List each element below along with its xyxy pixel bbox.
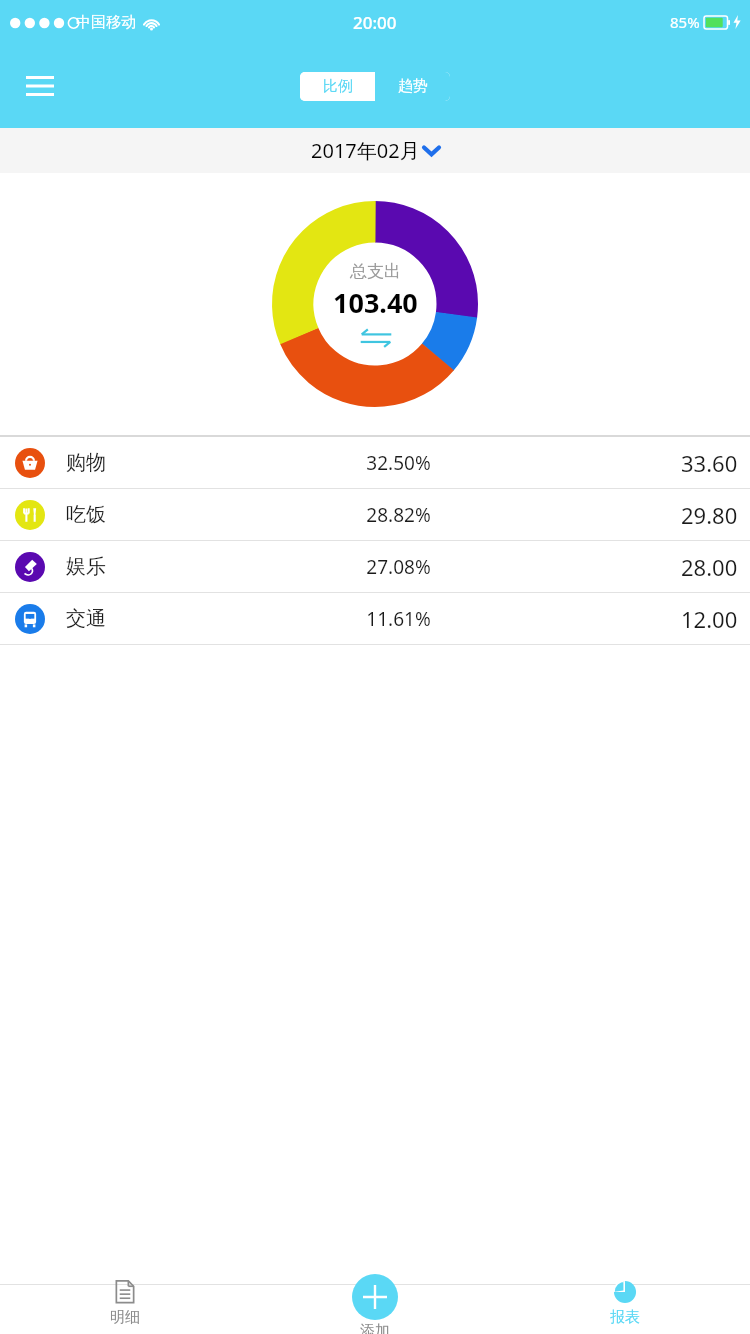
staticText: 总支出 [350, 261, 401, 282]
staticText: 20:00 [353, 11, 397, 34]
button[interactable]: 2017年02月 [297, 133, 454, 168]
button[interactable]: 趋势 [375, 72, 450, 101]
button[interactable]: 购物 [0, 437, 750, 488]
staticText: 购物 [66, 450, 106, 475]
staticText: 12.00 [681, 604, 738, 634]
button[interactable]: 娱乐 [0, 541, 750, 592]
button[interactable]: 添加 [250, 1274, 500, 1334]
staticText: 吃饭 [66, 502, 106, 527]
staticText: 娱乐 [66, 554, 106, 579]
staticText: 27.08% [116, 554, 681, 580]
staticText: 交通 [66, 606, 106, 631]
staticText: 报表 [610, 1308, 640, 1327]
staticText: 29.80 [681, 500, 738, 530]
staticText: 趋势 [398, 77, 428, 96]
button[interactable]: 报表 [500, 1274, 750, 1334]
button[interactable]: Menu [13, 59, 67, 113]
staticText: 中国移动 [76, 13, 136, 32]
staticText: 28.82% [116, 502, 681, 528]
button[interactable]: Switch income expense [359, 329, 393, 347]
staticText: 添加 [360, 1322, 390, 1334]
staticText: 32.50% [116, 450, 681, 476]
button[interactable]: 吃饭 [0, 489, 750, 540]
staticText: 33.60 [681, 448, 738, 478]
staticText: 103.40 [333, 284, 418, 321]
staticText: 28.00 [681, 552, 738, 582]
button[interactable]: 比例 [300, 72, 375, 101]
staticText: 2017年02月 [311, 137, 420, 164]
staticText: 11.61% [116, 606, 681, 632]
staticText: 85% [670, 12, 700, 32]
button[interactable]: 交通 [0, 593, 750, 644]
button[interactable]: 明细 [0, 1274, 250, 1334]
staticText: 比例 [323, 77, 353, 96]
staticText: 明细 [110, 1308, 140, 1327]
